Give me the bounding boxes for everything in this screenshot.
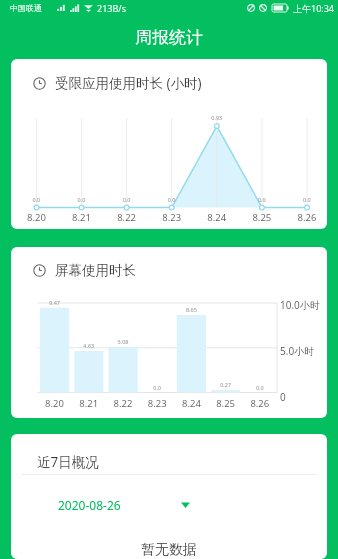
button[interactable]: 受限应用使用时长 (小时)	[11, 59, 327, 229]
staticText: 受限应用使用时长 (小时)	[55, 74, 202, 92]
staticText: 近7日概况	[37, 453, 99, 471]
button[interactable]: 屏幕使用时长	[11, 247, 327, 418]
staticText: 2020-08-26	[58, 497, 121, 513]
other: Select date	[181, 502, 190, 508]
staticText: 中国联通	[10, 3, 42, 13]
staticText: 暂无数据	[11, 541, 327, 559]
staticText: 屏幕使用时长	[55, 262, 136, 279]
staticText: 213B/s	[97, 2, 126, 14]
staticText: 周报统计	[135, 27, 203, 48]
staticText: 上午10:34	[293, 2, 335, 14]
button[interactable]: 2020-08-26	[58, 497, 190, 513]
